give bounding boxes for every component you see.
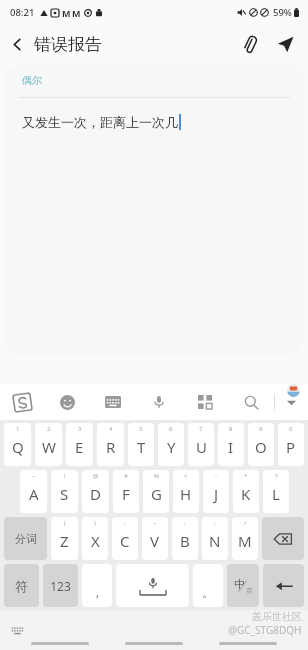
button[interactable]: 2 [35,423,62,466]
staticText: L [272,484,280,504]
button[interactable]: 3 [66,423,93,466]
staticText: 。 [202,585,214,600]
button[interactable]: Language toggle [227,564,259,607]
button[interactable]: ， [82,564,112,607]
button[interactable]: 5 [128,423,154,466]
button[interactable]: 符 [4,564,39,607]
staticText: : [184,519,186,527]
button[interactable]: 6 [158,423,184,466]
button[interactable]: 0 [278,423,304,466]
staticText: ! [64,472,66,480]
button[interactable]: Apps [182,384,228,420]
staticText: 2 [47,425,51,433]
staticText: Q [12,437,24,457]
button[interactable]: ? [263,470,289,513]
staticText: M [238,531,252,551]
button[interactable]: 。 [193,564,223,607]
button[interactable]: 4 [97,423,124,466]
button[interactable]: 1 [4,423,31,466]
staticText: 5 [139,425,143,433]
button[interactable]: : [172,517,198,560]
button[interactable]: Sogou input [0,384,45,420]
staticText: K [241,484,251,504]
staticText: ^ [184,472,188,480]
staticText: ? [275,472,278,480]
button[interactable]: ) [82,517,108,560]
button[interactable]: Enter [263,564,304,607]
button[interactable]: * [233,470,259,513]
staticText: R [106,437,116,457]
staticText: F [122,484,130,504]
staticText: N [209,531,221,551]
staticText: 8 [229,425,233,433]
staticText: B [180,531,190,551]
staticText: 错误报告 [34,34,102,55]
button[interactable]: ; [202,517,228,560]
staticText: 偶尔 [22,74,42,87]
staticText: C [120,531,130,551]
button[interactable]: 8 [218,423,244,466]
button[interactable]: 9 [248,423,274,466]
button[interactable]: More [275,384,308,420]
button[interactable]: Space [116,564,189,607]
button[interactable]: ( [51,517,78,560]
staticText: 6 [169,425,173,433]
button[interactable]: Navigation [219,642,277,645]
button[interactable]: Attach [232,27,266,61]
staticText: J [214,484,219,504]
button[interactable]: Emoji [45,384,90,420]
button[interactable]: ~ [142,517,168,560]
staticText: 59% [273,6,292,19]
staticText: 中 [234,577,245,591]
staticText: V [150,531,160,551]
button[interactable]: 分词 [4,517,47,560]
button[interactable]: Voice input [136,384,182,420]
staticText: 分词 [15,532,37,546]
button[interactable]: Account [287,384,300,397]
button[interactable]: - [203,470,229,513]
button[interactable]: 7 [188,423,214,466]
button[interactable]: Navigation [125,642,183,645]
staticText: M [62,7,71,19]
staticText: 7 [199,425,203,433]
staticText: D [90,484,101,504]
button[interactable]: Hide keyboard [8,621,26,639]
staticText: 英 [246,586,253,595]
staticText: 3 [78,425,82,433]
button[interactable]: ! [51,470,78,513]
button[interactable]: % [143,470,169,513]
button[interactable]: Search [228,384,274,420]
staticText: W [42,437,56,457]
staticText: - [124,519,126,527]
staticText: O [255,437,267,457]
button[interactable]: # [113,470,139,513]
button[interactable]: 123 [43,564,78,607]
staticText: P [286,437,296,457]
staticText: 123 [50,578,71,594]
button[interactable]: Send [268,27,302,61]
staticText: X [91,531,100,551]
staticText: E [75,437,84,457]
staticText: ， [91,585,103,600]
button[interactable]: Backspace [262,517,304,560]
button[interactable]: @ [82,470,109,513]
staticText: M [72,7,81,19]
staticText: ~ [32,472,36,480]
button[interactable]: Navigation [31,642,89,645]
staticText: G [151,484,162,504]
button[interactable]: - [112,517,138,560]
button[interactable]: ~ [20,470,47,513]
button[interactable]: / [232,517,258,560]
button[interactable]: Back [0,27,34,61]
staticText: 9 [259,425,263,433]
staticText: @ [93,472,99,480]
button[interactable]: ^ [173,470,199,513]
staticText: * [244,472,248,480]
staticText: A [29,484,39,504]
staticText: U [196,437,207,457]
button[interactable]: Keyboard [90,384,136,420]
staticText: @GC_STG8DQH [228,623,302,637]
staticText: S [60,484,69,504]
staticText: 符 [15,578,28,594]
staticText: ; [214,519,216,527]
